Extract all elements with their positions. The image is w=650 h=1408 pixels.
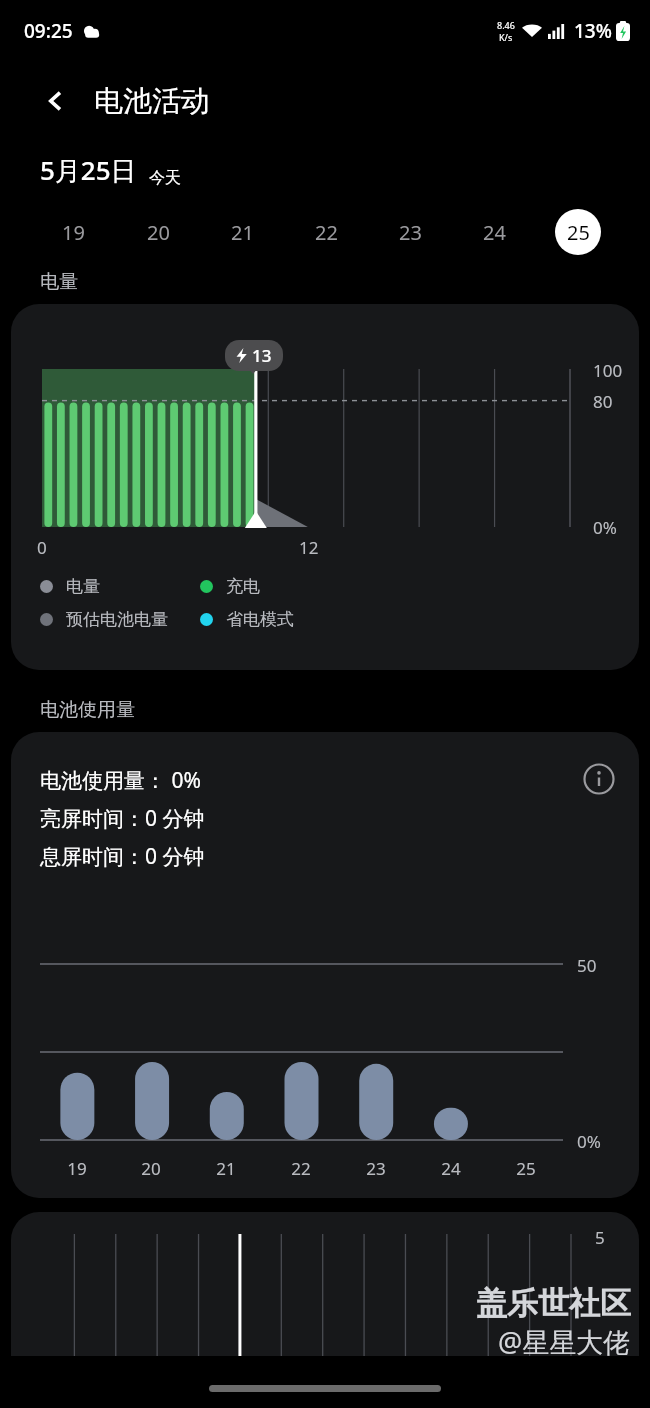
- staticText: 22: [291, 1157, 311, 1180]
- button[interactable]: 电池使用量： 0%: [11, 732, 639, 1198]
- staticText: 19: [62, 219, 85, 246]
- staticText: 20: [141, 1157, 161, 1180]
- staticText: 19: [67, 1157, 87, 1180]
- staticText: 预估电池电量: [66, 609, 168, 630]
- staticText: 0: [37, 536, 47, 559]
- button[interactable]: 24: [452, 208, 536, 256]
- staticText: 充电: [226, 576, 260, 597]
- staticText: 23: [366, 1157, 386, 1180]
- staticText: 25: [516, 1157, 536, 1180]
- staticText: 09:25: [24, 18, 73, 44]
- staticText: 21: [231, 219, 254, 246]
- staticText: 电量: [40, 270, 78, 294]
- staticText: 80: [593, 390, 613, 413]
- staticText: 13: [252, 344, 272, 367]
- staticText: 0%: [593, 516, 617, 539]
- staticText: 亮屏时间：0 分钟: [40, 804, 205, 833]
- staticText: 电池活动: [94, 83, 210, 120]
- staticText: 盖乐世社区: [476, 1284, 631, 1323]
- staticText: 12: [299, 536, 319, 559]
- staticText: 电量: [66, 576, 100, 597]
- staticText: 13%: [574, 18, 612, 44]
- staticText: 5月25日: [40, 152, 137, 188]
- staticText: K/s: [499, 31, 513, 43]
- staticText: 省电模式: [226, 609, 294, 630]
- button[interactable]: 100: [11, 304, 639, 670]
- button[interactable]: 20: [115, 208, 200, 256]
- staticText: 5: [595, 1226, 605, 1249]
- button[interactable]: 25: [536, 208, 620, 256]
- staticText: 22: [315, 219, 338, 246]
- staticText: 20: [147, 219, 170, 246]
- staticText: 息屏时间：0 分钟: [40, 842, 205, 871]
- staticText: 21: [216, 1157, 236, 1180]
- staticText: 25: [567, 219, 590, 246]
- staticText: 24: [483, 219, 506, 246]
- staticText: @星星大佬: [498, 1323, 631, 1360]
- staticText: 电池使用量： 0%: [40, 766, 201, 795]
- button[interactable]: 23: [368, 208, 452, 256]
- staticText: 8.46: [497, 19, 515, 31]
- button[interactable]: 21: [200, 208, 284, 256]
- staticText: 23: [399, 219, 422, 246]
- button[interactable]: Info: [579, 759, 619, 799]
- button[interactable]: 19: [30, 208, 115, 256]
- button[interactable]: 22: [284, 208, 368, 256]
- staticText: 50: [577, 954, 597, 977]
- staticText: 24: [441, 1157, 461, 1180]
- button[interactable]: Back: [34, 79, 78, 123]
- staticText: 今天: [149, 168, 181, 188]
- staticText: 0%: [577, 1130, 601, 1153]
- button[interactable]: 5: [11, 1212, 639, 1362]
- staticText: 电池使用量: [40, 698, 135, 722]
- staticText: 100: [593, 359, 623, 382]
